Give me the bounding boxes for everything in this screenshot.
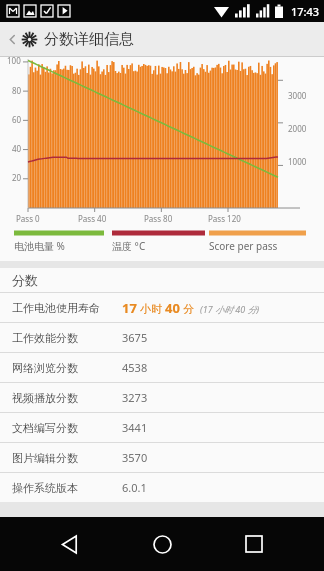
button[interactable]: Recents xyxy=(232,522,276,566)
staticText: 分数详细信息 xyxy=(44,30,134,49)
staticText: Pass 120 xyxy=(208,213,241,224)
staticText: 6.0.1 xyxy=(122,480,147,495)
staticText: 80 xyxy=(12,85,22,96)
staticText: 4538 xyxy=(122,360,148,375)
staticText: Pass 40 xyxy=(78,213,107,224)
button[interactable]: Home xyxy=(140,522,184,566)
staticText: 100 xyxy=(7,55,21,66)
staticText: 3273 xyxy=(122,390,148,405)
staticText: 3675 xyxy=(122,330,148,345)
button[interactable]: 图片编辑分数 xyxy=(0,443,324,472)
button[interactable]: 文档编写分数 xyxy=(0,413,324,442)
staticText: Pass 0 xyxy=(16,213,40,224)
staticText: 分数 xyxy=(12,272,38,288)
button[interactable]: 工作效能分数 xyxy=(0,323,324,352)
staticText: 3570 xyxy=(122,450,148,465)
staticText: 3000 xyxy=(288,90,307,101)
staticText: 网络浏览分数 xyxy=(12,361,78,375)
staticText: 20 xyxy=(12,172,22,183)
button[interactable]: Back xyxy=(5,32,19,46)
staticText: 工作电池使用寿命 xyxy=(12,301,100,315)
staticText: 17:43 xyxy=(291,4,320,19)
button[interactable]: 网络浏览分数 xyxy=(0,353,324,382)
button[interactable]: 操作系统版本 xyxy=(0,473,324,502)
button[interactable]: Back xyxy=(48,522,92,566)
button[interactable]: Back xyxy=(0,22,324,56)
button[interactable]: 视频播放分数 xyxy=(0,383,324,412)
staticText: 图片编辑分数 xyxy=(12,451,78,465)
staticText: 2000 xyxy=(288,123,307,134)
staticText: 1000 xyxy=(288,156,307,167)
staticText: Score per pass xyxy=(209,239,278,253)
staticText: 3441 xyxy=(122,420,148,435)
button[interactable]: 工作电池使用寿命 xyxy=(0,293,324,322)
staticText: 温度 °C xyxy=(112,239,146,253)
staticText: 工作效能分数 xyxy=(12,331,78,345)
staticText: 操作系统版本 xyxy=(12,481,78,495)
staticText: 17 小时 40 分 (17 小时 40 分) xyxy=(122,299,260,317)
staticText: 文档编写分数 xyxy=(12,421,78,435)
staticText: 视频播放分数 xyxy=(12,391,78,405)
staticText: 40 xyxy=(12,143,22,154)
staticText: 电池电量 % xyxy=(14,239,65,253)
staticText: 60 xyxy=(12,114,22,125)
staticText: Pass 80 xyxy=(144,213,173,224)
